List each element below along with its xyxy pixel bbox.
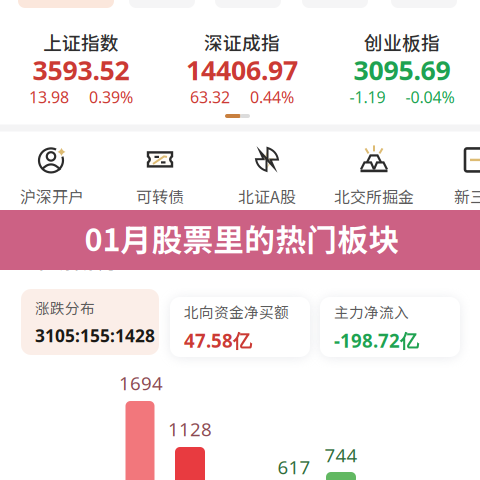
staticText: 市场概况 xyxy=(30,244,114,274)
button[interactable]: 14406.97 xyxy=(186,52,298,88)
staticText: 深证成指 xyxy=(204,28,280,55)
button[interactable]: 3593.52 xyxy=(32,52,129,88)
button[interactable]: 北交所掘金 xyxy=(334,144,414,208)
staticText: 1128 xyxy=(168,417,212,441)
button[interactable]: 63.32 xyxy=(190,86,294,108)
button[interactable]: 沪深开户 xyxy=(20,144,84,208)
staticText: 1694 xyxy=(119,371,163,395)
staticText: 上证指数 xyxy=(43,28,119,55)
staticText: 新三板 xyxy=(454,184,480,208)
button[interactable]: 北向资金净买额 xyxy=(170,297,310,357)
staticText: 14406.97 xyxy=(186,52,298,88)
staticText: 0.44% xyxy=(250,86,294,108)
button[interactable]: -1.19 xyxy=(349,86,454,108)
staticText: 744 xyxy=(324,443,357,467)
staticText: 北交所掘金 xyxy=(334,184,414,208)
staticText: 沪深开户 xyxy=(20,184,84,208)
button[interactable]: 市场概况 xyxy=(30,244,155,274)
button[interactable]: 深证成指 xyxy=(204,28,280,55)
staticText: -0.04% xyxy=(405,86,454,108)
staticText: -198.72亿 xyxy=(334,328,419,353)
button[interactable]: 涨跌分布 xyxy=(21,289,159,355)
staticText: 可转债 xyxy=(136,184,184,208)
staticText: 3105:155:1428 xyxy=(35,324,155,347)
staticText: 617 xyxy=(277,455,310,479)
button[interactable]: 新三板 xyxy=(454,144,480,208)
staticText: 47.58亿 xyxy=(184,328,252,353)
staticText: -1.19 xyxy=(349,86,385,108)
staticText: 01月股票里的热门板块 xyxy=(84,216,399,260)
button[interactable]: 可转债 xyxy=(136,144,184,208)
staticText: 北向资金净买额 xyxy=(184,301,289,322)
staticText: 0.39% xyxy=(89,86,133,108)
button[interactable]: 主力净流入 xyxy=(320,297,460,357)
button[interactable]: 创业板指 xyxy=(364,28,440,55)
staticText: 收起 xyxy=(123,247,155,271)
staticText: 63.32 xyxy=(190,86,230,108)
staticText: 3095.69 xyxy=(353,52,450,88)
staticText: 13.98 xyxy=(29,86,69,108)
staticText: 北证A股 xyxy=(238,184,296,208)
button[interactable]: 3095.69 xyxy=(353,52,450,88)
staticText: 涨跌分布 xyxy=(35,297,95,318)
staticText: 3593.52 xyxy=(32,52,129,88)
staticText: 创业板指 xyxy=(364,28,440,55)
button[interactable]: 上证指数 xyxy=(43,28,119,55)
button[interactable]: 北证A股 xyxy=(238,144,296,208)
staticText: 主力净流入 xyxy=(334,301,409,322)
button[interactable]: 13.98 xyxy=(29,86,133,108)
